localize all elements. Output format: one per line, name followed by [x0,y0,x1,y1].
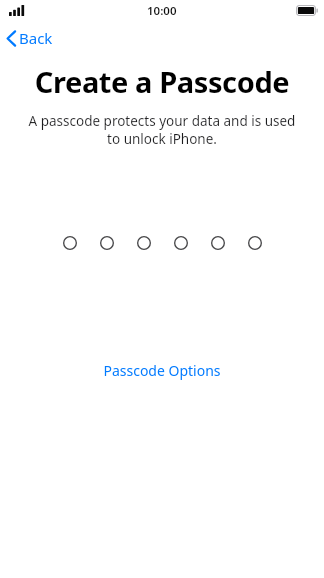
button[interactable]: Passcode Options [89,355,235,386]
other: Cellular signal strength [9,5,25,16]
button[interactable]: Back [0,26,63,50]
other: Battery full [296,5,318,16]
staticText: Back [19,28,53,48]
staticText: A passcode protects your data and is use… [22,112,302,148]
staticText: Passcode Options [103,361,221,380]
staticText: 10:00 [147,3,177,19]
staticText: Create a Passcode [0,62,324,101]
